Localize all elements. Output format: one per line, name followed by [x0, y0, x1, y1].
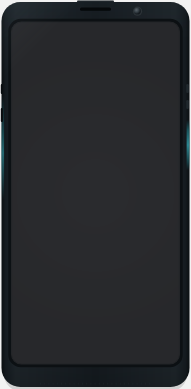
button[interactable]: Smartphone product image	[0, 0, 191, 389]
